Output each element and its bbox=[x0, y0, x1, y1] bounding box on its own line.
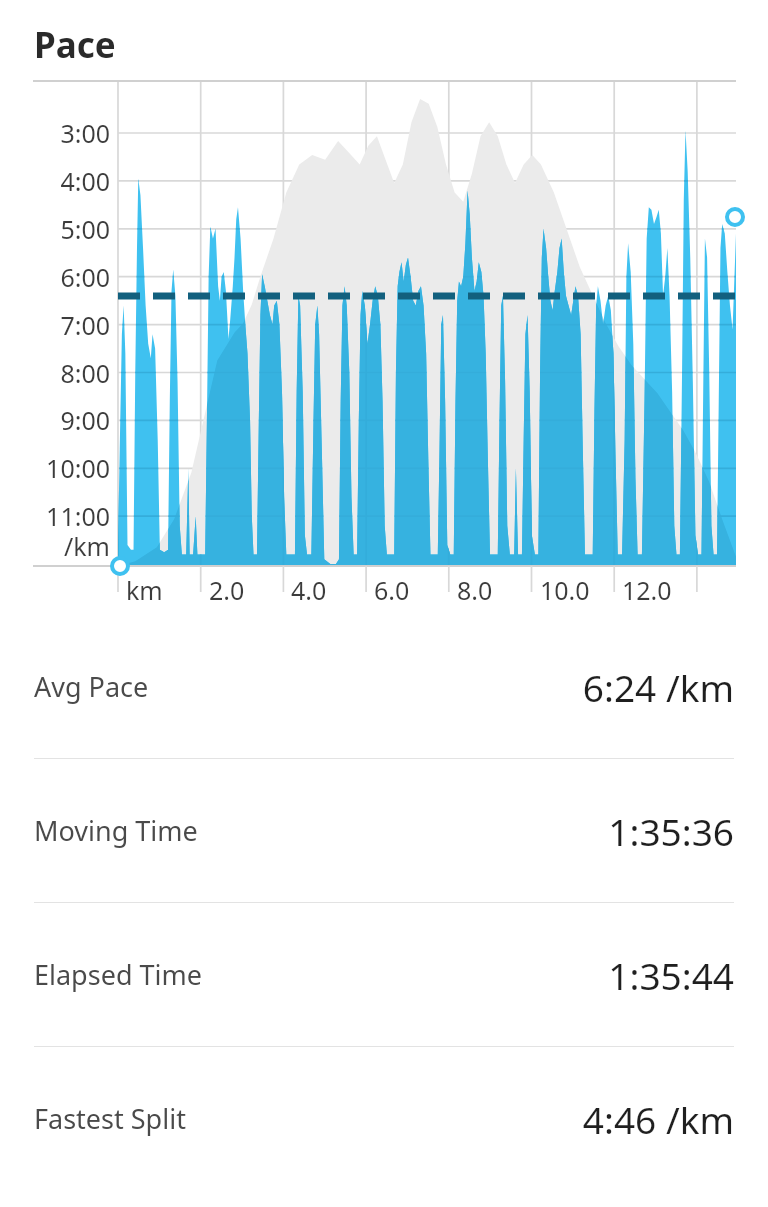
staticText: 9:00 bbox=[60, 403, 110, 437]
staticText: 7:00 bbox=[60, 308, 110, 342]
staticText: 4:46 /km bbox=[582, 1094, 734, 1144]
staticText: 2.0 bbox=[209, 573, 245, 607]
staticText: Avg Pace bbox=[34, 668, 149, 705]
staticText: 4.0 bbox=[291, 573, 327, 607]
staticText: 3:00 bbox=[60, 116, 110, 150]
button[interactable]: Moving Time bbox=[0, 759, 768, 902]
staticText: 6:24 /km bbox=[582, 662, 734, 712]
staticText: 11:00 bbox=[46, 499, 110, 533]
staticText: Pace bbox=[34, 21, 116, 69]
staticText: 8:00 bbox=[60, 356, 110, 390]
staticText: 10:00 bbox=[46, 451, 110, 485]
staticText: 5:00 bbox=[60, 212, 110, 246]
staticText: 8.0 bbox=[457, 573, 493, 607]
staticText: /km bbox=[63, 529, 110, 563]
staticText: Elapsed Time bbox=[34, 956, 202, 993]
staticText: km bbox=[126, 573, 163, 607]
staticText: Fastest Split bbox=[34, 1100, 186, 1137]
staticText: 6.0 bbox=[374, 573, 410, 607]
staticText: 4:00 bbox=[60, 164, 110, 198]
button[interactable]: Fastest Split bbox=[0, 1047, 768, 1190]
button[interactable]: Pace over distance chart bbox=[0, 69, 768, 615]
staticText: 1:35:44 bbox=[608, 950, 734, 1000]
button[interactable]: Avg Pace bbox=[0, 615, 768, 758]
staticText: 12.0 bbox=[622, 573, 672, 607]
staticText: 10.0 bbox=[540, 573, 590, 607]
button[interactable]: Elapsed Time bbox=[0, 903, 768, 1046]
staticText: 6:00 bbox=[60, 260, 110, 294]
staticText: 1:35:36 bbox=[608, 806, 734, 856]
staticText: Moving Time bbox=[34, 812, 198, 849]
